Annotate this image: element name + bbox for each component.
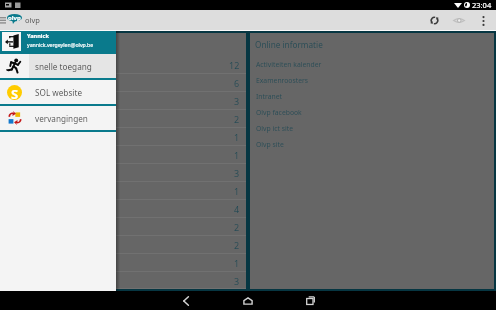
button[interactable]: Olvp site — [250, 136, 494, 152]
button[interactable]: More options — [477, 14, 490, 27]
button[interactable]: 1 — [2, 254, 246, 272]
button[interactable]: 12 — [2, 56, 246, 74]
button[interactable]: S — [0, 80, 116, 104]
button[interactable]: Open navigation drawer — [0, 13, 8, 27]
button[interactable]: Recent apps — [298, 291, 322, 310]
button[interactable]: 1 — [2, 182, 246, 200]
button[interactable]: Olvp ict site — [250, 120, 494, 136]
staticText: snelle toegang — [35, 61, 92, 72]
button[interactable]: 2 — [2, 218, 246, 236]
staticText: SOL website — [35, 87, 83, 98]
staticText: 3 — [234, 167, 240, 179]
button[interactable]: Back — [174, 291, 198, 310]
button[interactable]: Refresh — [428, 14, 441, 27]
button[interactable]: Toggle visibility — [452, 13, 466, 27]
staticText: olvp — [25, 15, 40, 25]
button[interactable]: 6 — [2, 74, 246, 92]
staticText: Olvp ict site — [256, 124, 293, 133]
button[interactable]: 2 — [2, 236, 246, 254]
button[interactable]: 1 — [2, 146, 246, 164]
button[interactable]: 3 — [2, 164, 246, 182]
button[interactable]: 4 — [2, 200, 246, 218]
button[interactable]: 1 — [2, 128, 246, 146]
staticText: Intranet — [256, 92, 282, 101]
button[interactable]: 2 — [2, 110, 246, 128]
staticText: Olvp site — [256, 140, 284, 149]
staticText: Activiteiten kalender — [256, 60, 322, 69]
staticText: 4 — [234, 203, 240, 215]
staticText: olvp — [8, 14, 21, 22]
staticText: Examenroosters — [256, 76, 309, 85]
button[interactable]: Examenroosters — [250, 72, 494, 88]
staticText: 3 — [234, 95, 240, 107]
staticText: 12 — [229, 59, 240, 71]
staticText: Online informatie — [255, 39, 323, 50]
staticText: 3 — [234, 275, 240, 287]
staticText: S — [11, 85, 19, 100]
staticText: 6 — [234, 77, 240, 89]
staticText: vervangingen — [35, 113, 88, 124]
button[interactable]: Home — [236, 291, 260, 310]
staticText: 1 — [234, 185, 240, 197]
button[interactable]: Activiteiten kalender — [250, 56, 494, 72]
staticText: 2 — [234, 239, 240, 251]
staticText: 1 — [234, 131, 240, 143]
staticText: yannick.vergeylen@olvp.be — [27, 41, 94, 48]
button[interactable]: Intranet — [250, 88, 494, 104]
staticText: Olvp facebook — [256, 108, 302, 117]
button[interactable]: Olvp facebook — [250, 104, 494, 120]
button[interactable]: snelle toegang — [0, 54, 116, 78]
staticText: 1 — [234, 149, 240, 161]
staticText: 2 — [234, 221, 240, 233]
staticText: 23:04 — [472, 0, 492, 10]
button[interactable]: Yannick — [0, 31, 116, 52]
staticText: Yannick — [27, 32, 49, 40]
staticText: 2 — [234, 113, 240, 125]
button[interactable]: 3 — [2, 92, 246, 110]
staticText: 1 — [234, 257, 240, 269]
button[interactable]: 3 — [2, 272, 246, 289]
button[interactable]: vervangingen — [0, 106, 116, 130]
